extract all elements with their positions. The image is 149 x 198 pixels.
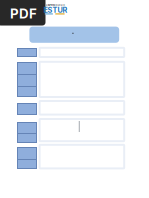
staticText: GRUP TECNOLÒGIC — [45, 4, 64, 6]
staticText: PDF — [10, 6, 37, 22]
staticText: ESTUR — [43, 6, 67, 15]
